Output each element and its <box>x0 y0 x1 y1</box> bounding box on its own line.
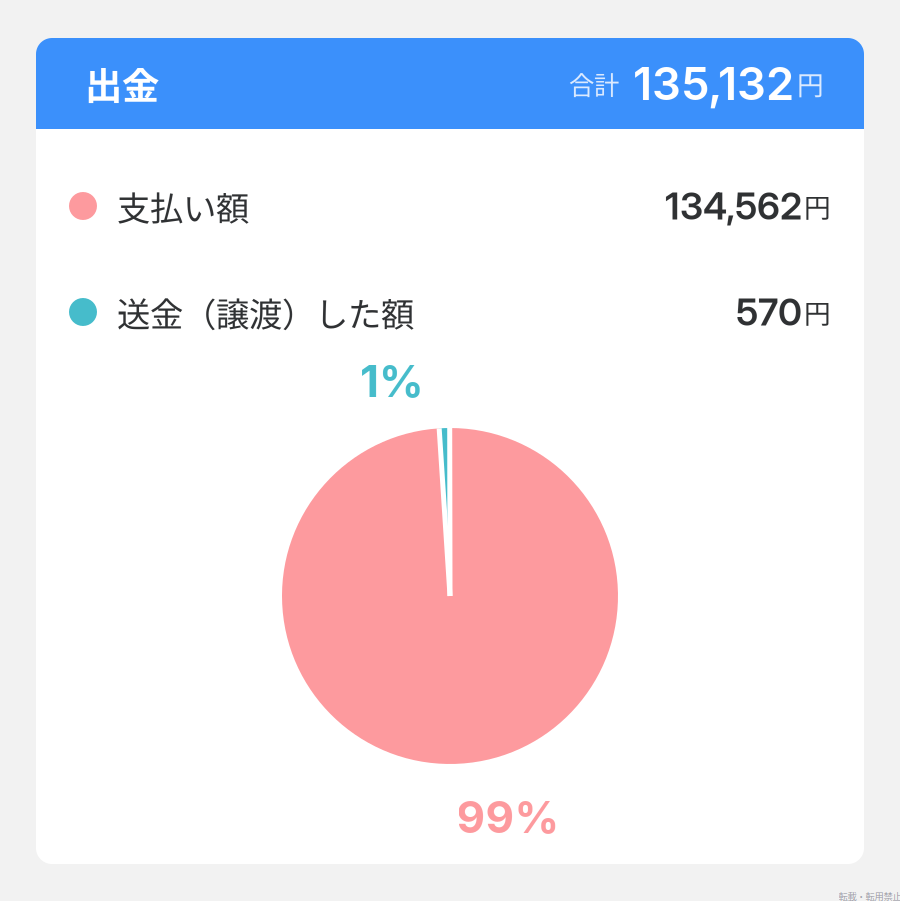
staticText: 円 <box>804 293 831 331</box>
staticText: 1% <box>360 354 424 408</box>
staticText: 570 <box>736 289 802 335</box>
staticText: 支払い額 <box>117 182 249 230</box>
button[interactable]: 支払い額 <box>36 153 864 259</box>
staticText: 円 <box>797 64 824 103</box>
staticText: 転載・転用禁止 <box>838 889 900 901</box>
staticText: 134,562 <box>665 183 802 229</box>
staticText: 合計 <box>569 65 619 102</box>
staticText: 135,132 <box>633 56 794 111</box>
staticText: 99% <box>456 790 559 844</box>
staticText: 出金 <box>85 56 159 111</box>
staticText: 送金（譲渡）した額 <box>117 288 414 336</box>
staticText: 円 <box>804 187 831 225</box>
button[interactable]: 送金（譲渡）した額 <box>36 259 864 365</box>
